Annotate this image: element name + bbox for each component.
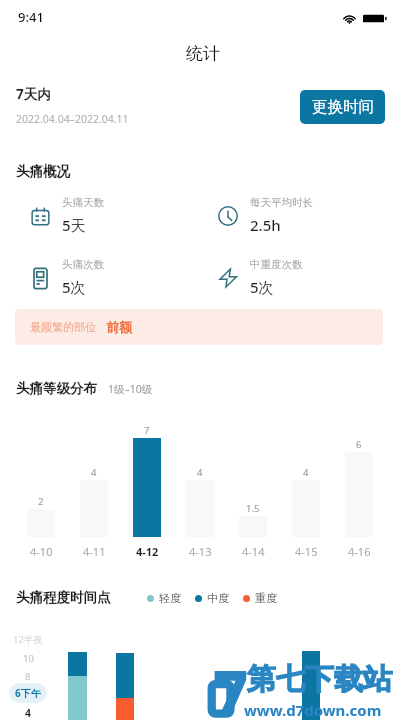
staticText: 6下午	[15, 686, 41, 700]
staticText: 1级–10级	[108, 382, 153, 396]
staticText: 中重度次数	[250, 258, 303, 271]
staticText: 2022.04.04–2022.04.11	[16, 112, 129, 126]
staticText: 8	[25, 670, 31, 683]
staticText: 头痛程度时间点	[16, 589, 111, 606]
staticText: 2	[38, 495, 44, 508]
staticText: 头痛等级分布	[16, 380, 97, 397]
staticText: www.d7down.com	[244, 700, 382, 720]
button[interactable]: 更换时间	[300, 90, 385, 124]
other: Battery	[363, 13, 387, 24]
staticText: 4	[303, 466, 309, 479]
staticText: 4	[91, 466, 97, 479]
staticText: 5次	[62, 277, 86, 297]
staticText: 轻度	[159, 591, 181, 605]
staticText: 7天内	[16, 85, 51, 103]
staticText: 9:41	[18, 8, 44, 26]
staticText: 2.5h	[250, 215, 281, 235]
staticText: 7	[144, 424, 150, 437]
staticText: 4-10	[30, 544, 53, 559]
staticText: 头痛天数	[62, 196, 104, 209]
staticText: 4-11	[83, 544, 106, 559]
staticText: 6	[356, 438, 362, 451]
staticText: 4-12	[136, 544, 159, 559]
staticText: 5次	[250, 277, 274, 297]
staticText: 前额	[106, 319, 132, 335]
staticText: 中度	[207, 591, 229, 605]
staticText: 重度	[255, 591, 277, 605]
staticText: 每天平均时长	[250, 196, 313, 209]
staticText: 4	[25, 706, 32, 720]
staticText: 10	[23, 652, 34, 665]
staticText: 头痛次数	[62, 258, 104, 271]
staticText: 4-16	[348, 544, 371, 559]
staticText: 12半夜	[13, 633, 43, 646]
staticText: 4	[197, 466, 203, 479]
staticText: 更换时间	[312, 97, 374, 117]
staticText: 4-13	[189, 544, 212, 559]
staticText: 4-14	[242, 544, 265, 559]
staticText: 最频繁的部位	[30, 320, 96, 334]
staticText: 1.5	[246, 502, 260, 515]
staticText: 头痛概况	[16, 163, 70, 180]
staticText: 5天	[62, 215, 86, 235]
staticText: 统计	[186, 43, 220, 64]
staticText: 第七下载站	[247, 661, 392, 698]
other: WiFi	[342, 13, 357, 24]
staticText: 4-15	[295, 544, 318, 559]
